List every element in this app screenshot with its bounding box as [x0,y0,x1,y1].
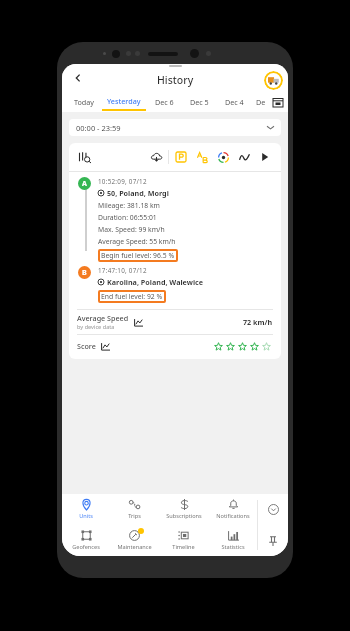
staticText: Average Speed [77,313,129,323]
button[interactable]: Dec 4 [217,92,252,112]
staticText: Yesterday [107,96,141,106]
staticText: Duration: 06:55:01 [98,213,157,222]
button[interactable]: Yesterday [101,92,147,112]
button[interactable]: De [252,92,270,112]
button[interactable]: Average Speed [77,310,273,334]
staticText: Max. Speed: 99 km/h [98,225,165,234]
button[interactable]: Geofences [62,525,110,556]
staticText: History [157,73,194,87]
button[interactable]: 00:00 - 23:59 [69,119,281,136]
staticText: B [82,268,87,278]
button[interactable]: Trips [110,494,159,525]
button[interactable]: Markers A B [194,149,210,165]
staticText: Today [74,97,94,107]
staticText: Notifications [216,512,250,520]
button[interactable]: Download [148,149,164,165]
staticText: 17:47:10, 07/12 [98,266,147,275]
button[interactable]: Dec 5 [182,92,217,112]
staticText: A [82,179,87,189]
staticText: Karolina, Poland, Walewice [107,277,204,287]
button[interactable]: Back [68,68,88,88]
button[interactable]: Chart [236,149,252,165]
button[interactable]: Score [77,335,273,357]
staticText: 50, Poland, Morgi [107,188,169,198]
staticText: Maintenance [117,543,152,551]
button[interactable]: Notifications [208,494,257,525]
staticText: Units [79,512,93,520]
button[interactable]: Units [62,494,110,525]
button[interactable]: Subscriptions [159,494,208,525]
staticText: Statistics [221,543,245,551]
staticText: Timeline [172,543,195,551]
button[interactable]: Pin [258,525,288,556]
staticText: End fuel level: 92 % [101,292,163,301]
staticText: De [256,97,266,107]
button[interactable]: Timeline [159,525,208,556]
staticText: Begin fuel level: 96.5 % [101,251,175,260]
staticText: Subscriptions [166,512,202,520]
button[interactable]: Today [66,92,101,112]
button[interactable]: Map search [77,149,93,165]
button[interactable]: Maintenance [110,525,159,556]
button[interactable]: Dec 6 [147,92,182,112]
button[interactable]: Sensors [215,149,231,165]
button[interactable]: Play [257,149,273,165]
staticText: Trips [128,512,141,520]
staticText: Score [77,341,96,351]
staticText: Mileage: 381.18 km [98,201,160,210]
staticText: Dec 4 [225,97,244,107]
button[interactable]: Statistics [208,525,257,556]
staticText: by device data [77,323,115,331]
button[interactable]: Collapse [258,494,288,525]
button[interactable]: Calendar [270,94,286,110]
staticText: Dec 5 [190,97,209,107]
staticText: 72 km/h [243,317,273,327]
staticText: Average Speed: 55 km/h [98,237,176,246]
staticText: 10:52:09, 07/12 [98,177,147,186]
staticText: Geofences [72,543,100,551]
staticText: 00:00 - 23:59 [76,123,121,133]
button[interactable]: Profile [264,71,283,90]
staticText: Dec 6 [155,97,174,107]
button[interactable]: Parkings [173,149,189,165]
